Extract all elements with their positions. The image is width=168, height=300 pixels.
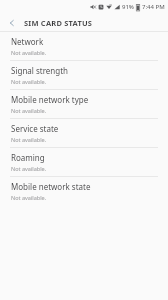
button[interactable]: Roaming	[0, 148, 168, 176]
staticText: Not available.	[11, 194, 47, 201]
staticText: Roaming	[11, 152, 45, 163]
staticText: Network	[11, 36, 44, 47]
staticText: Not available.	[11, 136, 47, 143]
button[interactable]: Signal strength	[0, 61, 168, 89]
staticText: SIM CARD STATUS	[24, 18, 93, 28]
staticText: Not available.	[11, 49, 47, 56]
button[interactable]: Service state	[0, 119, 168, 147]
staticText: Signal strength	[11, 65, 69, 76]
staticText: Not available.	[11, 78, 47, 85]
staticText: Not available.	[11, 165, 47, 172]
staticText: Mobile network state	[11, 181, 91, 192]
staticText: 91%	[122, 3, 134, 11]
button[interactable]: Mobile network state	[0, 177, 168, 205]
button[interactable]: Mobile network type	[0, 90, 168, 118]
staticText: Service state	[11, 123, 59, 134]
staticText: Not available.	[11, 107, 47, 114]
button[interactable]: Navigate up	[0, 14, 24, 31]
staticText: Mobile network type	[11, 94, 89, 105]
button[interactable]: Network	[0, 32, 168, 60]
staticText: 7:44 PM	[142, 3, 165, 11]
